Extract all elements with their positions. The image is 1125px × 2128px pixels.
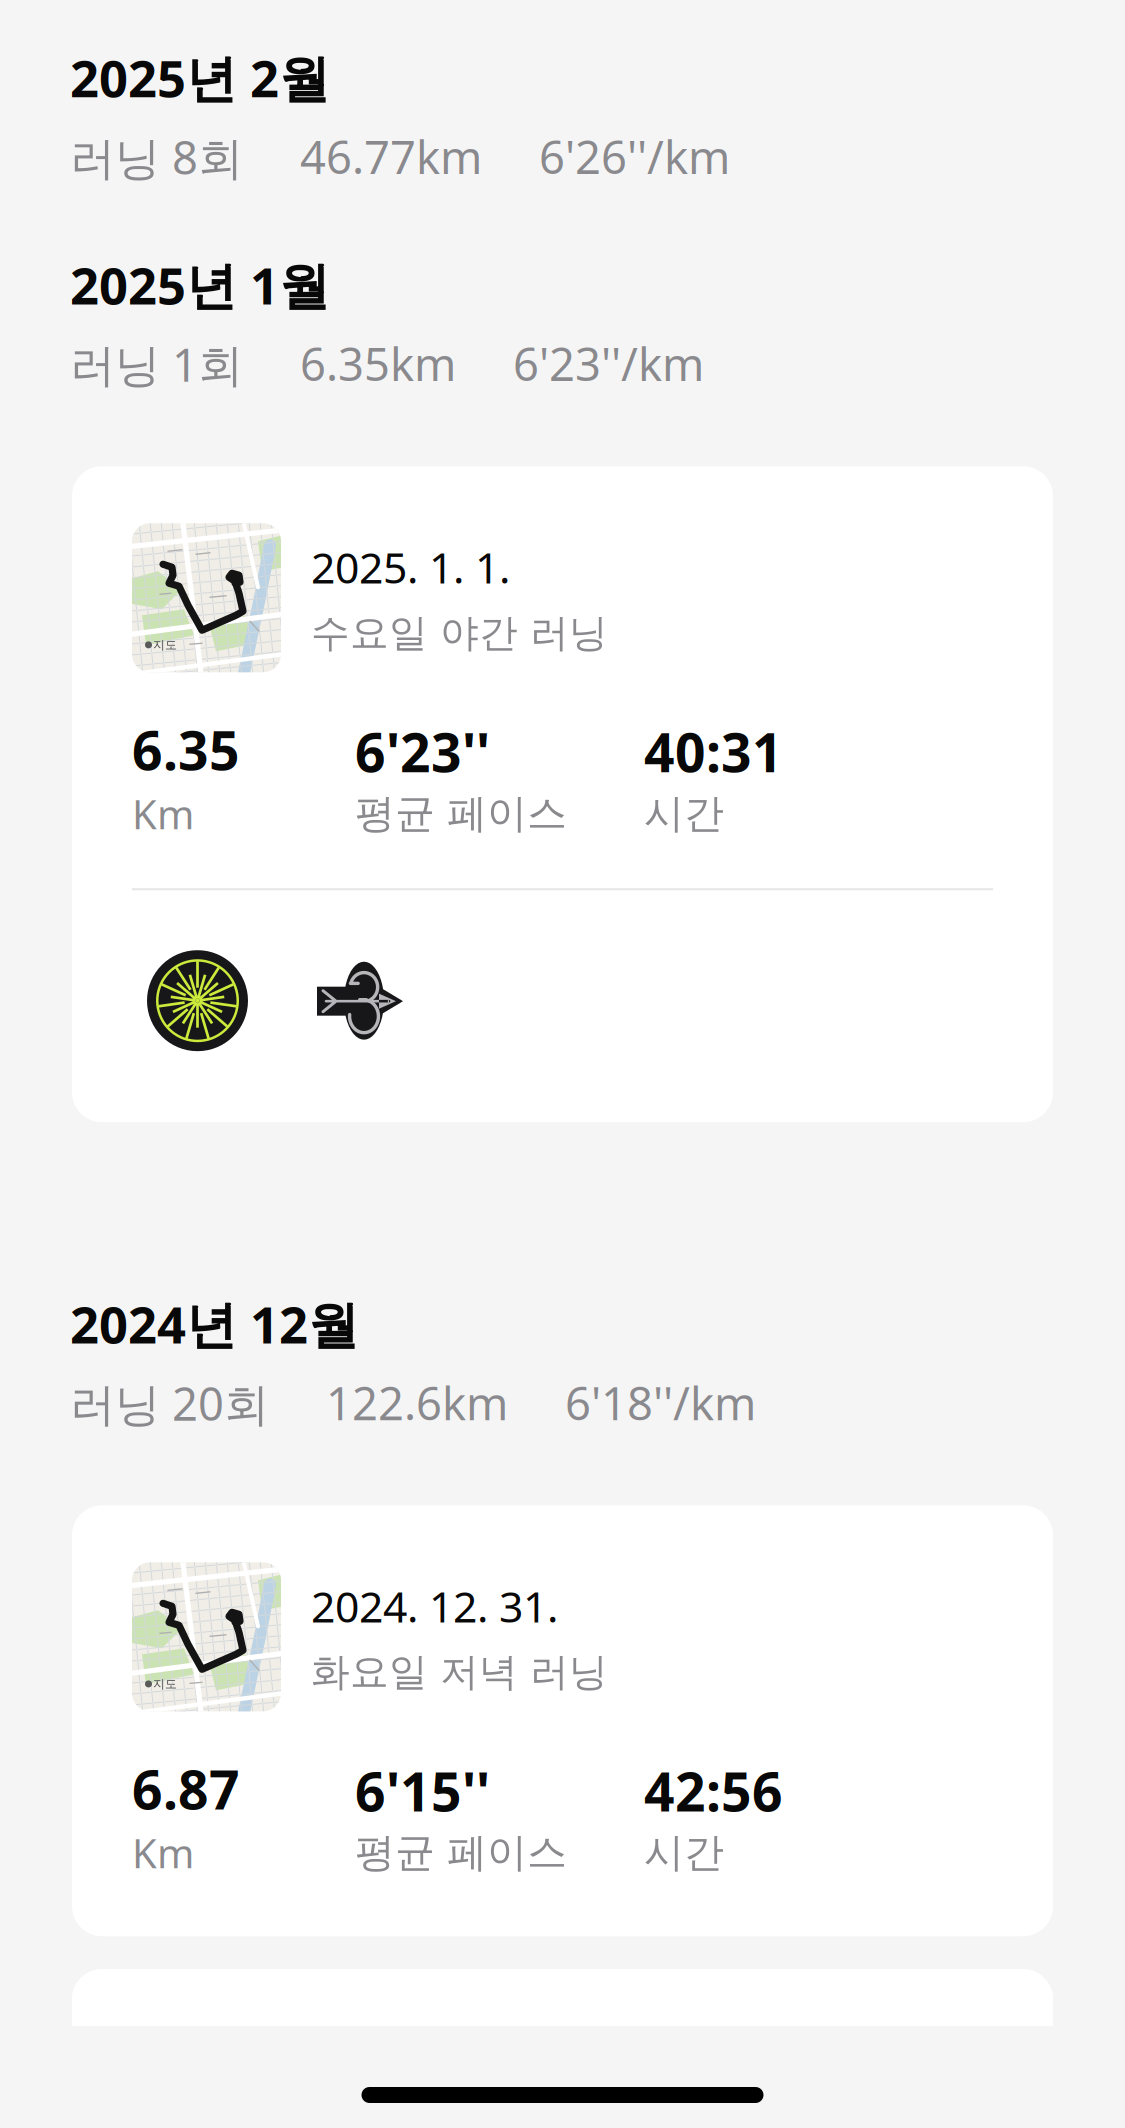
staticText: 2025년 2월	[70, 44, 330, 111]
staticText: 시간	[644, 1828, 724, 1877]
staticText: 평균 페이스	[355, 789, 567, 838]
staticText: 6.35km	[300, 333, 456, 394]
staticText: 지도	[153, 637, 177, 652]
staticText: 2024. 12. 31.	[311, 1578, 558, 1634]
staticText: 러닝 1회	[70, 334, 243, 394]
staticText: 2025. 1. 1.	[311, 539, 510, 595]
staticText: 6'23''/km	[513, 333, 704, 394]
staticText: 6'23''	[355, 716, 490, 787]
staticText: 화요일 저녁 러닝	[311, 1648, 608, 1696]
staticText: 2025년 1월	[70, 251, 330, 318]
staticText: 시간	[644, 789, 724, 838]
staticText: 2024년 12월	[70, 1290, 359, 1357]
staticText: 6'18''/km	[565, 1372, 756, 1433]
staticText: 러닝 8회	[70, 127, 243, 187]
button[interactable]: 지도	[72, 466, 1053, 1122]
staticText: 46.77km	[300, 126, 482, 186]
staticText: 6'15''	[355, 1755, 490, 1826]
staticText: 평균 페이스	[355, 1828, 567, 1877]
staticText: Km	[132, 787, 194, 840]
staticText: 6'26''/km	[539, 126, 730, 186]
staticText: 6.87	[132, 1753, 240, 1824]
staticText: 122.6km	[326, 1372, 508, 1433]
staticText: 40:31	[644, 716, 783, 787]
staticText: 지도	[153, 1677, 177, 1691]
staticText: 러닝 20회	[70, 1373, 269, 1433]
staticText: 42:56	[644, 1755, 783, 1826]
staticText: Km	[132, 1826, 194, 1879]
staticText: 수요일 야간 러닝	[311, 609, 608, 657]
button[interactable]: 다음 러닝 기록	[72, 1969, 1053, 2089]
button[interactable]: 지도	[72, 1505, 1053, 1936]
staticText: 6.35	[132, 714, 240, 785]
